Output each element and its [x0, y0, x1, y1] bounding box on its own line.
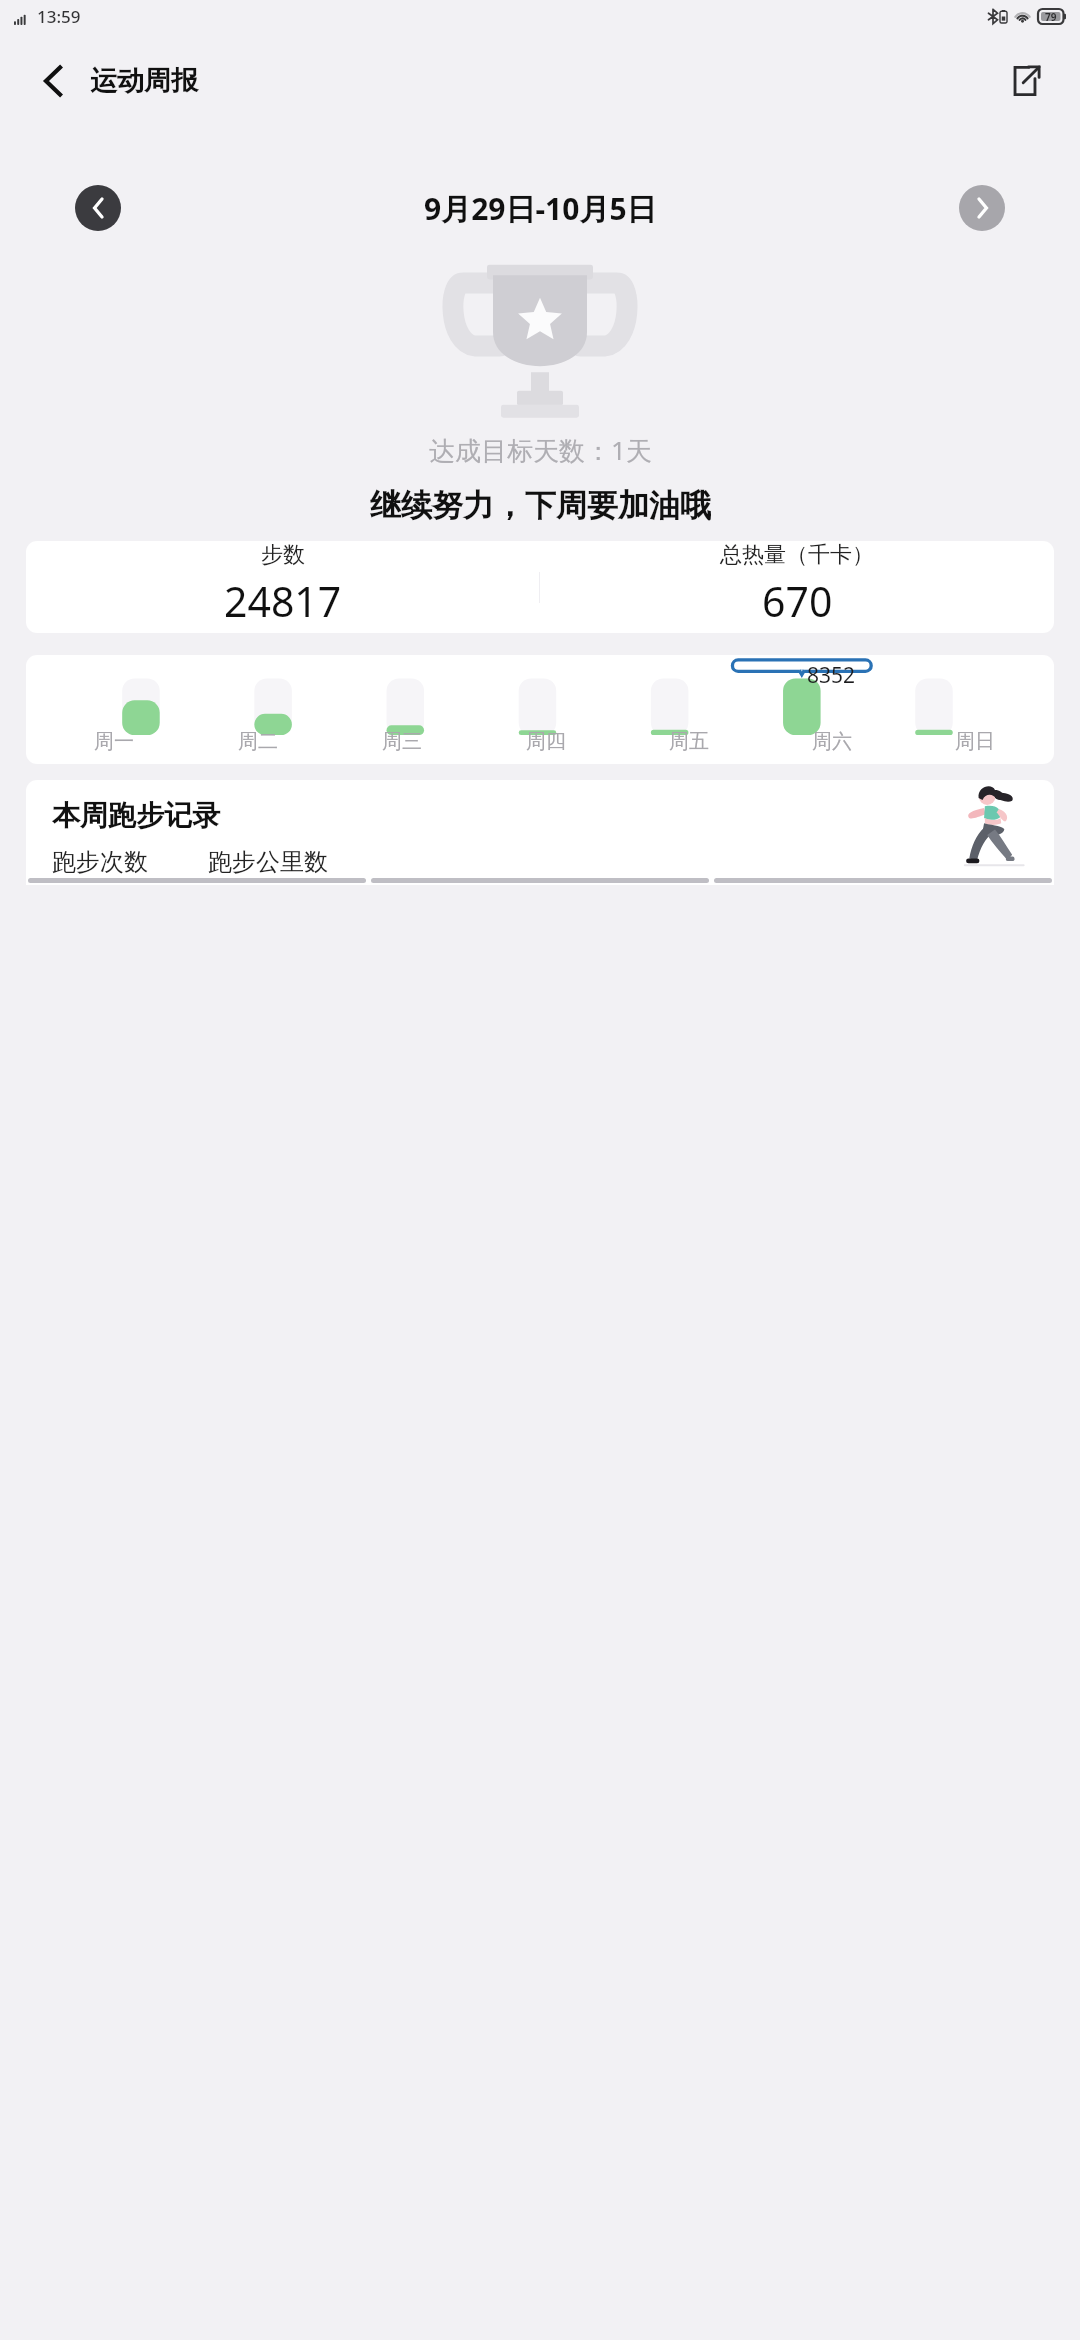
staticText: 总热量（千卡） — [720, 541, 874, 569]
staticText: 周五 — [669, 729, 709, 754]
button[interactable]: Share — [1004, 60, 1046, 102]
staticText: 8352 — [807, 661, 856, 690]
staticText: 周四 — [526, 729, 566, 754]
staticText: 本周跑步记录 — [52, 798, 220, 833]
staticText: 9月29日-10月5日 — [424, 188, 657, 229]
staticText: 步数 — [261, 541, 305, 569]
staticText: 79 — [1045, 10, 1057, 24]
button[interactable]: Next week — [959, 185, 1005, 231]
staticText: 670 — [762, 573, 833, 629]
staticText: 周一 — [94, 729, 134, 754]
staticText: 跑步次数 — [52, 847, 148, 877]
button[interactable]: 本周跑步记录 — [26, 780, 1054, 885]
button[interactable]: 步数 — [26, 541, 1054, 633]
staticText: 运动周报 — [90, 64, 198, 98]
staticText: 周三 — [382, 729, 422, 754]
staticText: 周日 — [955, 729, 995, 754]
staticText: 周六 — [812, 729, 852, 754]
staticText: 24817 — [224, 573, 342, 629]
button[interactable]: 周一 — [26, 655, 1054, 764]
button[interactable]: Back — [34, 58, 206, 104]
staticText: 达成目标天数：1天 — [429, 432, 652, 468]
staticText: 13:59 — [37, 5, 81, 28]
staticText: 跑步公里数 — [208, 847, 328, 877]
other: Back — [42, 64, 64, 98]
staticText: 继续努力，下周要加油哦 — [370, 486, 711, 525]
button[interactable]: Previous week — [75, 185, 121, 231]
staticText: 周二 — [238, 729, 278, 754]
